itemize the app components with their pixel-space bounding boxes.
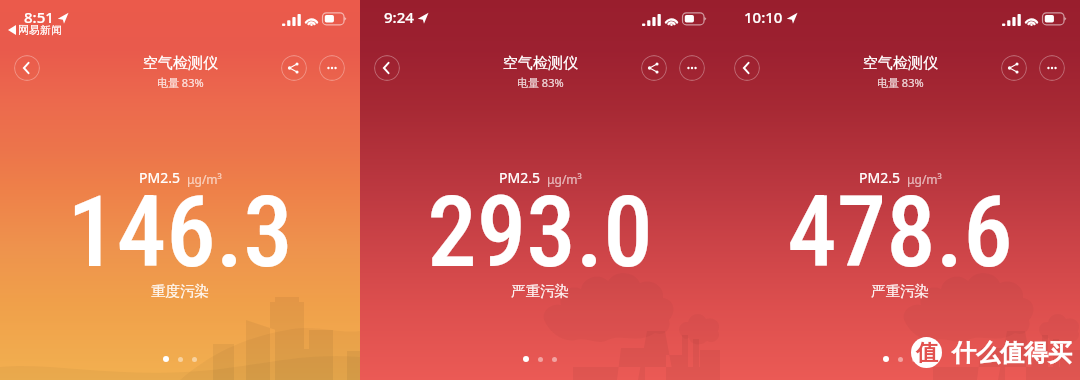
staticText: 10:10 [744,7,783,27]
button[interactable]: Back [734,55,760,81]
staticText: 空气检测仪 [143,54,218,73]
staticText: 电量 83% [517,75,564,90]
staticText: PM2.5 [859,168,900,187]
staticText: 值 [916,339,938,367]
staticText: 严重污染 [871,282,929,300]
staticText: μg/m³ [547,171,582,187]
button[interactable]: Share [641,55,667,81]
staticText: 8:51 [24,7,54,27]
staticText: μg/m³ [907,171,942,187]
staticText: 什么值得买 [952,338,1072,368]
staticText: 空气检测仪 [863,54,938,73]
staticText: 重度污染 [151,282,209,300]
staticText: μg/m³ [187,171,222,187]
staticText: 146.3 [67,174,293,290]
button[interactable]: More options [1039,55,1065,81]
staticText: 电量 83% [157,75,204,90]
button[interactable]: Share [1001,55,1027,81]
staticText: 9:24 [384,7,414,27]
staticText: 空气检测仪 [503,54,578,73]
staticText: 严重污染 [511,282,569,300]
button[interactable]: Back [374,55,400,81]
staticText: 电量 83% [877,75,924,90]
staticText: PM2.5 [139,168,180,187]
button[interactable]: Share [281,55,307,81]
button[interactable]: Back [14,55,40,81]
staticText: 478.6 [787,174,1013,290]
staticText: 网易新闻 [18,23,62,37]
button[interactable]: More options [319,55,345,81]
staticText: 293.0 [427,174,653,290]
button[interactable]: More options [679,55,705,81]
staticText: PM2.5 [499,168,540,187]
